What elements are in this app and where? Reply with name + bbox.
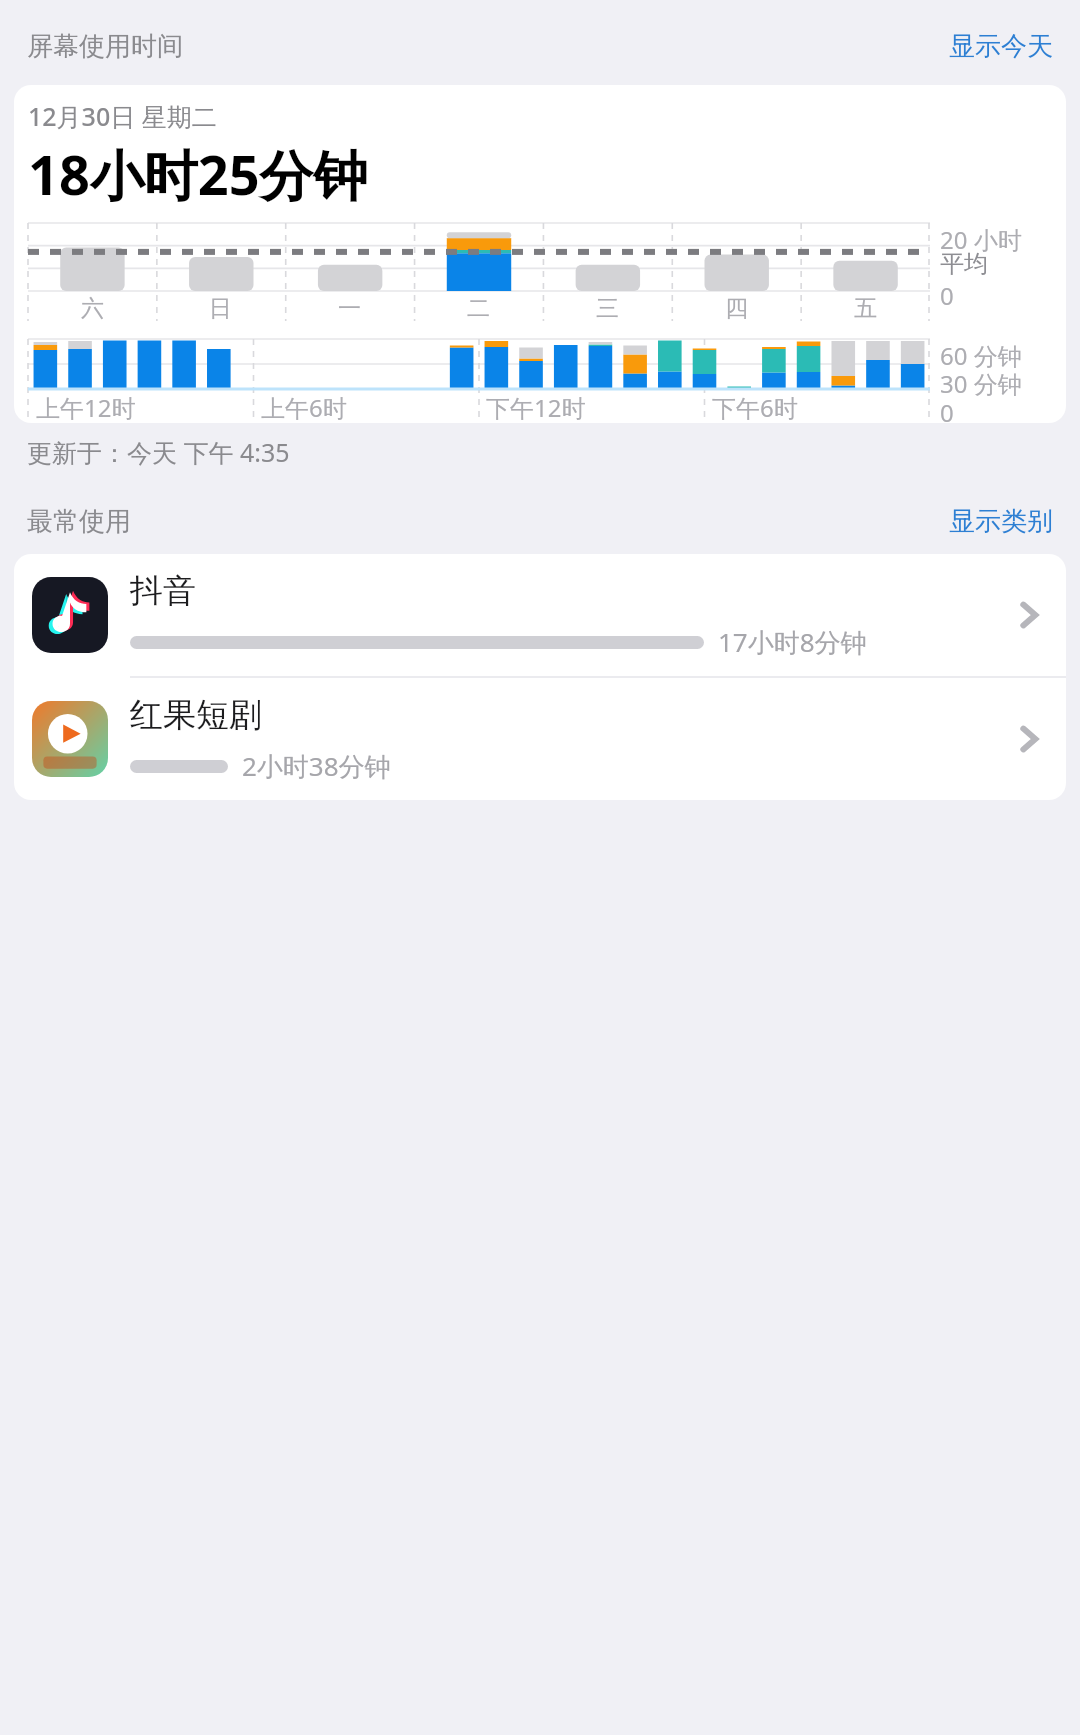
staticText: 一 (338, 294, 361, 323)
button[interactable]: 显示类别 (949, 505, 1053, 538)
staticText: 60 分钟 (940, 339, 1022, 372)
staticText: 屏幕使用时间 (27, 30, 183, 63)
staticText: 上午12时 (36, 391, 136, 423)
staticText: 抖音 (130, 570, 196, 612)
staticText: 更新于：今天 下午 4:35 (27, 435, 290, 469)
staticText: 20 小时 (940, 223, 1022, 256)
staticText: 最常使用 (27, 505, 131, 538)
staticText: 显示类别 (949, 505, 1053, 538)
staticText: 18小时25分钟 (28, 137, 368, 211)
staticText: 2小时38分钟 (242, 748, 391, 784)
staticText: 30 分钟 (940, 367, 1022, 400)
staticText: 日 (209, 294, 232, 323)
staticText: 上午6时 (261, 391, 347, 423)
button[interactable]: 抖音 (14, 554, 1066, 678)
other: Details (1006, 717, 1050, 761)
staticText: 显示今天 (949, 30, 1053, 63)
other: Details (1006, 593, 1050, 637)
staticText: 0 (940, 279, 954, 312)
staticText: 平均 (940, 249, 988, 279)
staticText: 下午12时 (486, 391, 586, 423)
staticText: 0 (940, 396, 954, 423)
staticText: 五 (854, 294, 877, 323)
staticText: 二 (467, 294, 490, 323)
staticText: 下午6时 (712, 391, 798, 423)
button[interactable]: 显示今天 (949, 30, 1053, 63)
staticText: 17小时8分钟 (718, 624, 867, 660)
button[interactable]: 红果短剧 (14, 678, 1066, 800)
staticText: 红果短剧 (130, 694, 262, 736)
button[interactable]: 12月30日 星期二 (14, 85, 1066, 423)
staticText: 三 (596, 294, 619, 323)
staticText: 六 (81, 294, 104, 323)
staticText: 四 (725, 294, 748, 323)
staticText: 12月30日 星期二 (28, 99, 217, 133)
